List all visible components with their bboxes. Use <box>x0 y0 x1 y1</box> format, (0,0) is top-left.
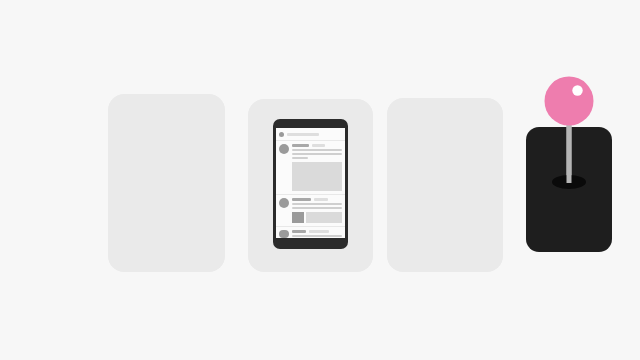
button[interactable]: Phone preview <box>248 99 373 272</box>
button[interactable]: Pinned item <box>526 127 612 252</box>
button[interactable]: Phone preview <box>273 119 348 249</box>
